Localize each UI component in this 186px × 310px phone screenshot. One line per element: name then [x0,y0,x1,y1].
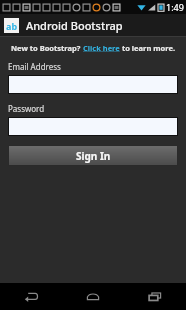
staticText: Click here [83,43,120,53]
staticText: Sign In [76,149,111,163]
button[interactable]: Home [62,283,124,310]
staticText: to learn more. [120,43,176,53]
button[interactable] [8,117,178,136]
button[interactable]: Back [0,283,62,310]
button[interactable]: Sign In [8,145,178,166]
button[interactable]: Click here [83,43,120,53]
button[interactable]: Recents [124,283,186,310]
staticText: Email Address [8,61,61,72]
staticText: 1:49 [166,1,184,13]
staticText: Android Bootstrap [26,18,123,33]
staticText: New to Bootstrap? [11,43,83,53]
button[interactable] [8,75,178,94]
staticText: ab [6,20,18,32]
staticText: Password [8,103,45,114]
